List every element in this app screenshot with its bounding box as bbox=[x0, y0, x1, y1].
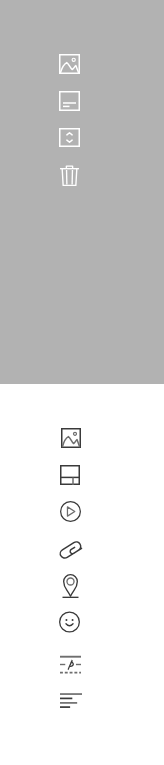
button[interactable]: Text bbox=[51, 684, 91, 717]
button[interactable]: Reorder bbox=[50, 119, 89, 156]
button[interactable]: Location bbox=[54, 565, 87, 607]
button[interactable]: Line style bbox=[51, 646, 90, 683]
button[interactable]: Emoji bbox=[50, 602, 89, 642]
button[interactable]: Play video bbox=[51, 492, 90, 531]
button[interactable]: Layout bbox=[51, 456, 89, 494]
button[interactable]: Insert image bbox=[50, 45, 89, 83]
button[interactable]: Insert card bbox=[50, 82, 89, 120]
button[interactable]: Attach file bbox=[50, 531, 91, 569]
button[interactable]: Image bbox=[52, 419, 90, 457]
button[interactable]: Delete bbox=[51, 156, 88, 195]
